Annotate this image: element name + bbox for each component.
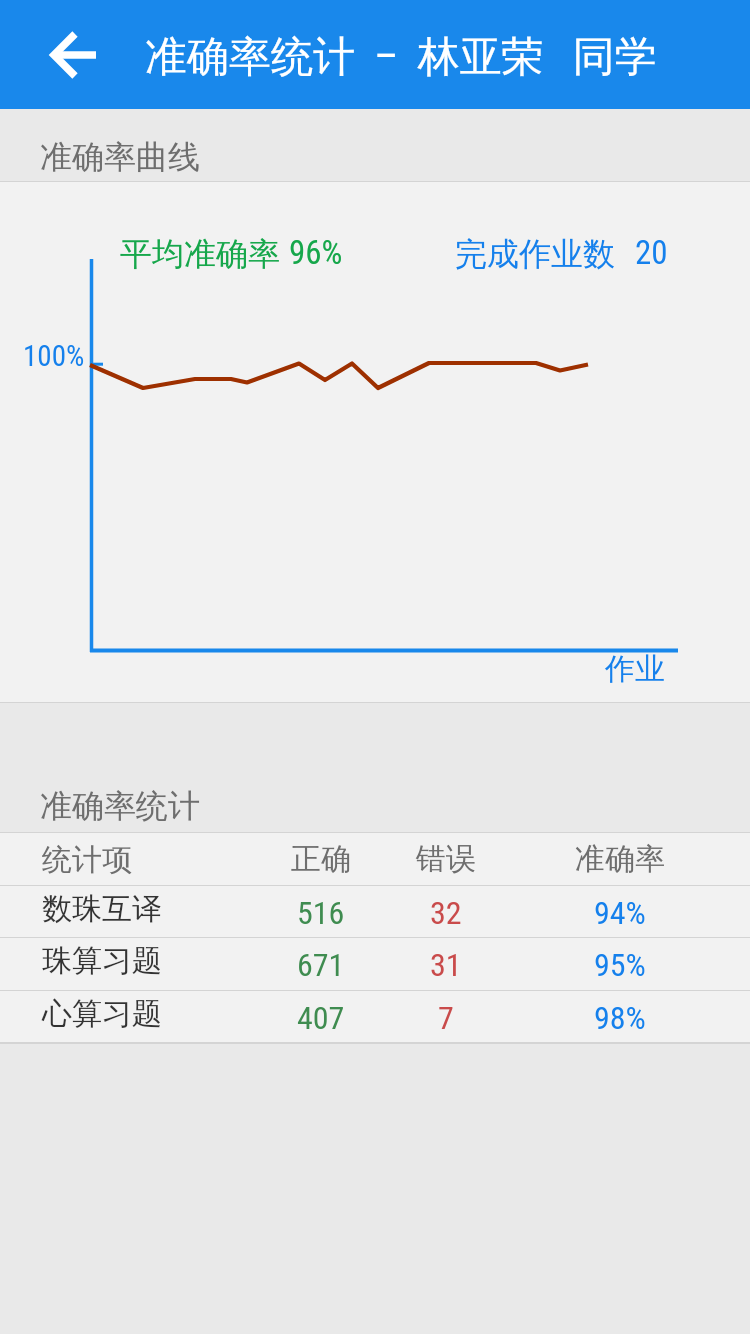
button[interactable]: 心算习题 (0, 991, 750, 1042)
staticText: 100% (23, 339, 85, 373)
staticText: 407 (297, 999, 345, 1037)
staticText: 正确 (291, 840, 351, 878)
staticText: 作业 (605, 650, 665, 688)
staticText: 心算习题 (42, 995, 162, 1033)
staticText: 516 (297, 894, 345, 932)
staticText: 准确率统计 (40, 786, 200, 826)
staticText: 平均准确率 (120, 234, 280, 274)
staticText: 20 (635, 233, 668, 272)
staticText: 671 (297, 946, 345, 984)
staticText: 准确率曲线 (40, 137, 200, 177)
button[interactable]: Back (30, 12, 116, 98)
staticText: 完成作业数 (455, 234, 615, 274)
staticText: 准确率统计 – 林亚荣 同学 (145, 31, 657, 84)
staticText: 31 (430, 946, 462, 984)
staticText: 32 (430, 894, 462, 932)
staticText: 94% (594, 894, 646, 932)
button[interactable]: 珠算习题 (0, 938, 750, 990)
staticText: 错误 (416, 840, 476, 878)
staticText: 95% (594, 946, 646, 984)
staticText: 7 (438, 999, 454, 1037)
staticText: 数珠互译 (42, 890, 162, 928)
button[interactable]: 数珠互译 (0, 886, 750, 937)
staticText: 珠算习题 (42, 942, 162, 980)
staticText: 96% (289, 233, 343, 272)
staticText: 准确率 (575, 840, 665, 878)
staticText: 98% (594, 999, 646, 1037)
staticText: 统计项 (42, 841, 132, 879)
